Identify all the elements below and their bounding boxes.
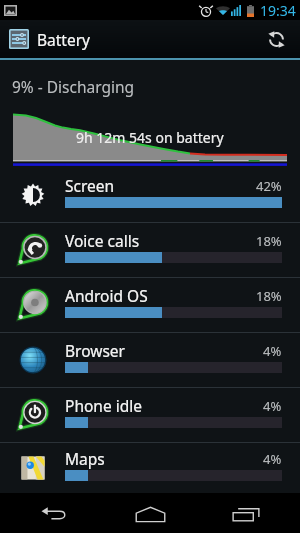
staticText: Battery [37,29,91,50]
staticText: Browser [65,340,125,361]
staticText: Maps [65,448,105,469]
button[interactable]: Refresh [256,20,296,58]
staticText: Voice calls [65,230,140,251]
staticText: Phone idle [65,395,142,416]
staticText: 18% [256,232,282,250]
staticText: 9% - Discharging [12,76,135,97]
staticText: 42% [256,177,282,195]
button[interactable]: Phone idle [0,387,300,442]
staticText: 18% [256,287,282,305]
staticText: Screen [65,175,115,196]
staticText: Android OS [65,285,148,306]
button[interactable]: Maps [0,442,300,493]
staticText: 19:34 [260,1,296,20]
button[interactable]: Screen [0,167,300,222]
button[interactable]: Back [23,493,85,533]
staticText: 9h 12m 54s on battery [76,128,224,147]
button[interactable]: Android OS [0,277,300,332]
button[interactable]: Recents [215,493,277,533]
button[interactable]: Home [119,493,181,533]
staticText: 4% [263,450,282,468]
staticText: 4% [263,397,282,415]
button[interactable]: Voice calls [0,222,300,277]
staticText: 4% [263,342,282,360]
button[interactable]: Browser [0,332,300,387]
